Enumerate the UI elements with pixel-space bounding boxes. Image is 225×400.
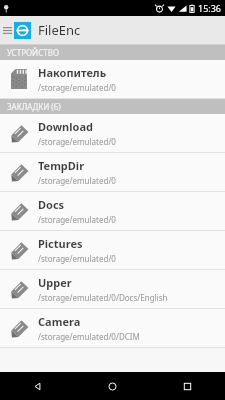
staticText: Накопитель (38, 65, 107, 80)
staticText: /storage/emulated/0/DCIM (38, 331, 140, 342)
staticText: FileEnc (38, 21, 81, 39)
staticText: /storage/emulated/0 (38, 136, 116, 147)
staticText: /storage/emulated/0/Docs/English (38, 292, 168, 303)
staticText: Upper (38, 275, 72, 290)
staticText: 15:36 (198, 2, 222, 14)
button[interactable]: Home (75, 372, 150, 400)
button[interactable]: Download (0, 114, 225, 152)
button[interactable]: Pictures (0, 231, 225, 269)
staticText: /storage/emulated/0 (38, 253, 116, 264)
button[interactable]: Back (0, 372, 75, 400)
staticText: ЗАКЛАДКИ (6) (7, 101, 61, 112)
button[interactable]: Open navigation drawer (0, 16, 14, 44)
staticText: Download (38, 119, 93, 134)
staticText: /storage/emulated/0 (38, 82, 116, 93)
staticText: /storage/emulated/0 (38, 175, 116, 186)
staticText: TempDir (38, 158, 85, 173)
staticText: Docs (38, 197, 65, 212)
button[interactable]: Docs (0, 192, 225, 230)
staticText: /storage/emulated/0 (38, 214, 116, 225)
button[interactable]: Накопитель (0, 60, 225, 98)
staticText: УСТРОЙСТВО (7, 47, 60, 58)
button[interactable]: TempDir (0, 153, 225, 191)
button[interactable]: Upper (0, 270, 225, 308)
staticText: Pictures (38, 236, 83, 251)
staticText: Camera (38, 314, 81, 329)
button[interactable]: Camera (0, 309, 225, 347)
button[interactable]: Recent apps (150, 372, 225, 400)
